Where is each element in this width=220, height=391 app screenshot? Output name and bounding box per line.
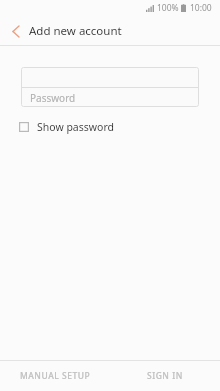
staticText: SIGN IN (147, 370, 183, 382)
staticText: Password (30, 91, 76, 105)
staticText: 100% (157, 2, 179, 14)
staticText: MANUAL SETUP (20, 370, 91, 382)
button[interactable]: Password (21, 88, 199, 107)
button[interactable]: Email address (21, 67, 199, 87)
staticText: Add new account (29, 23, 122, 39)
staticText: Show password (37, 120, 114, 134)
button[interactable]: MANUAL SETUP (0, 361, 110, 391)
button[interactable]: Show password (15, 117, 122, 137)
button[interactable]: Navigate up (5, 20, 27, 42)
staticText: 10:00 (190, 2, 212, 14)
button[interactable]: SIGN IN (110, 361, 220, 391)
